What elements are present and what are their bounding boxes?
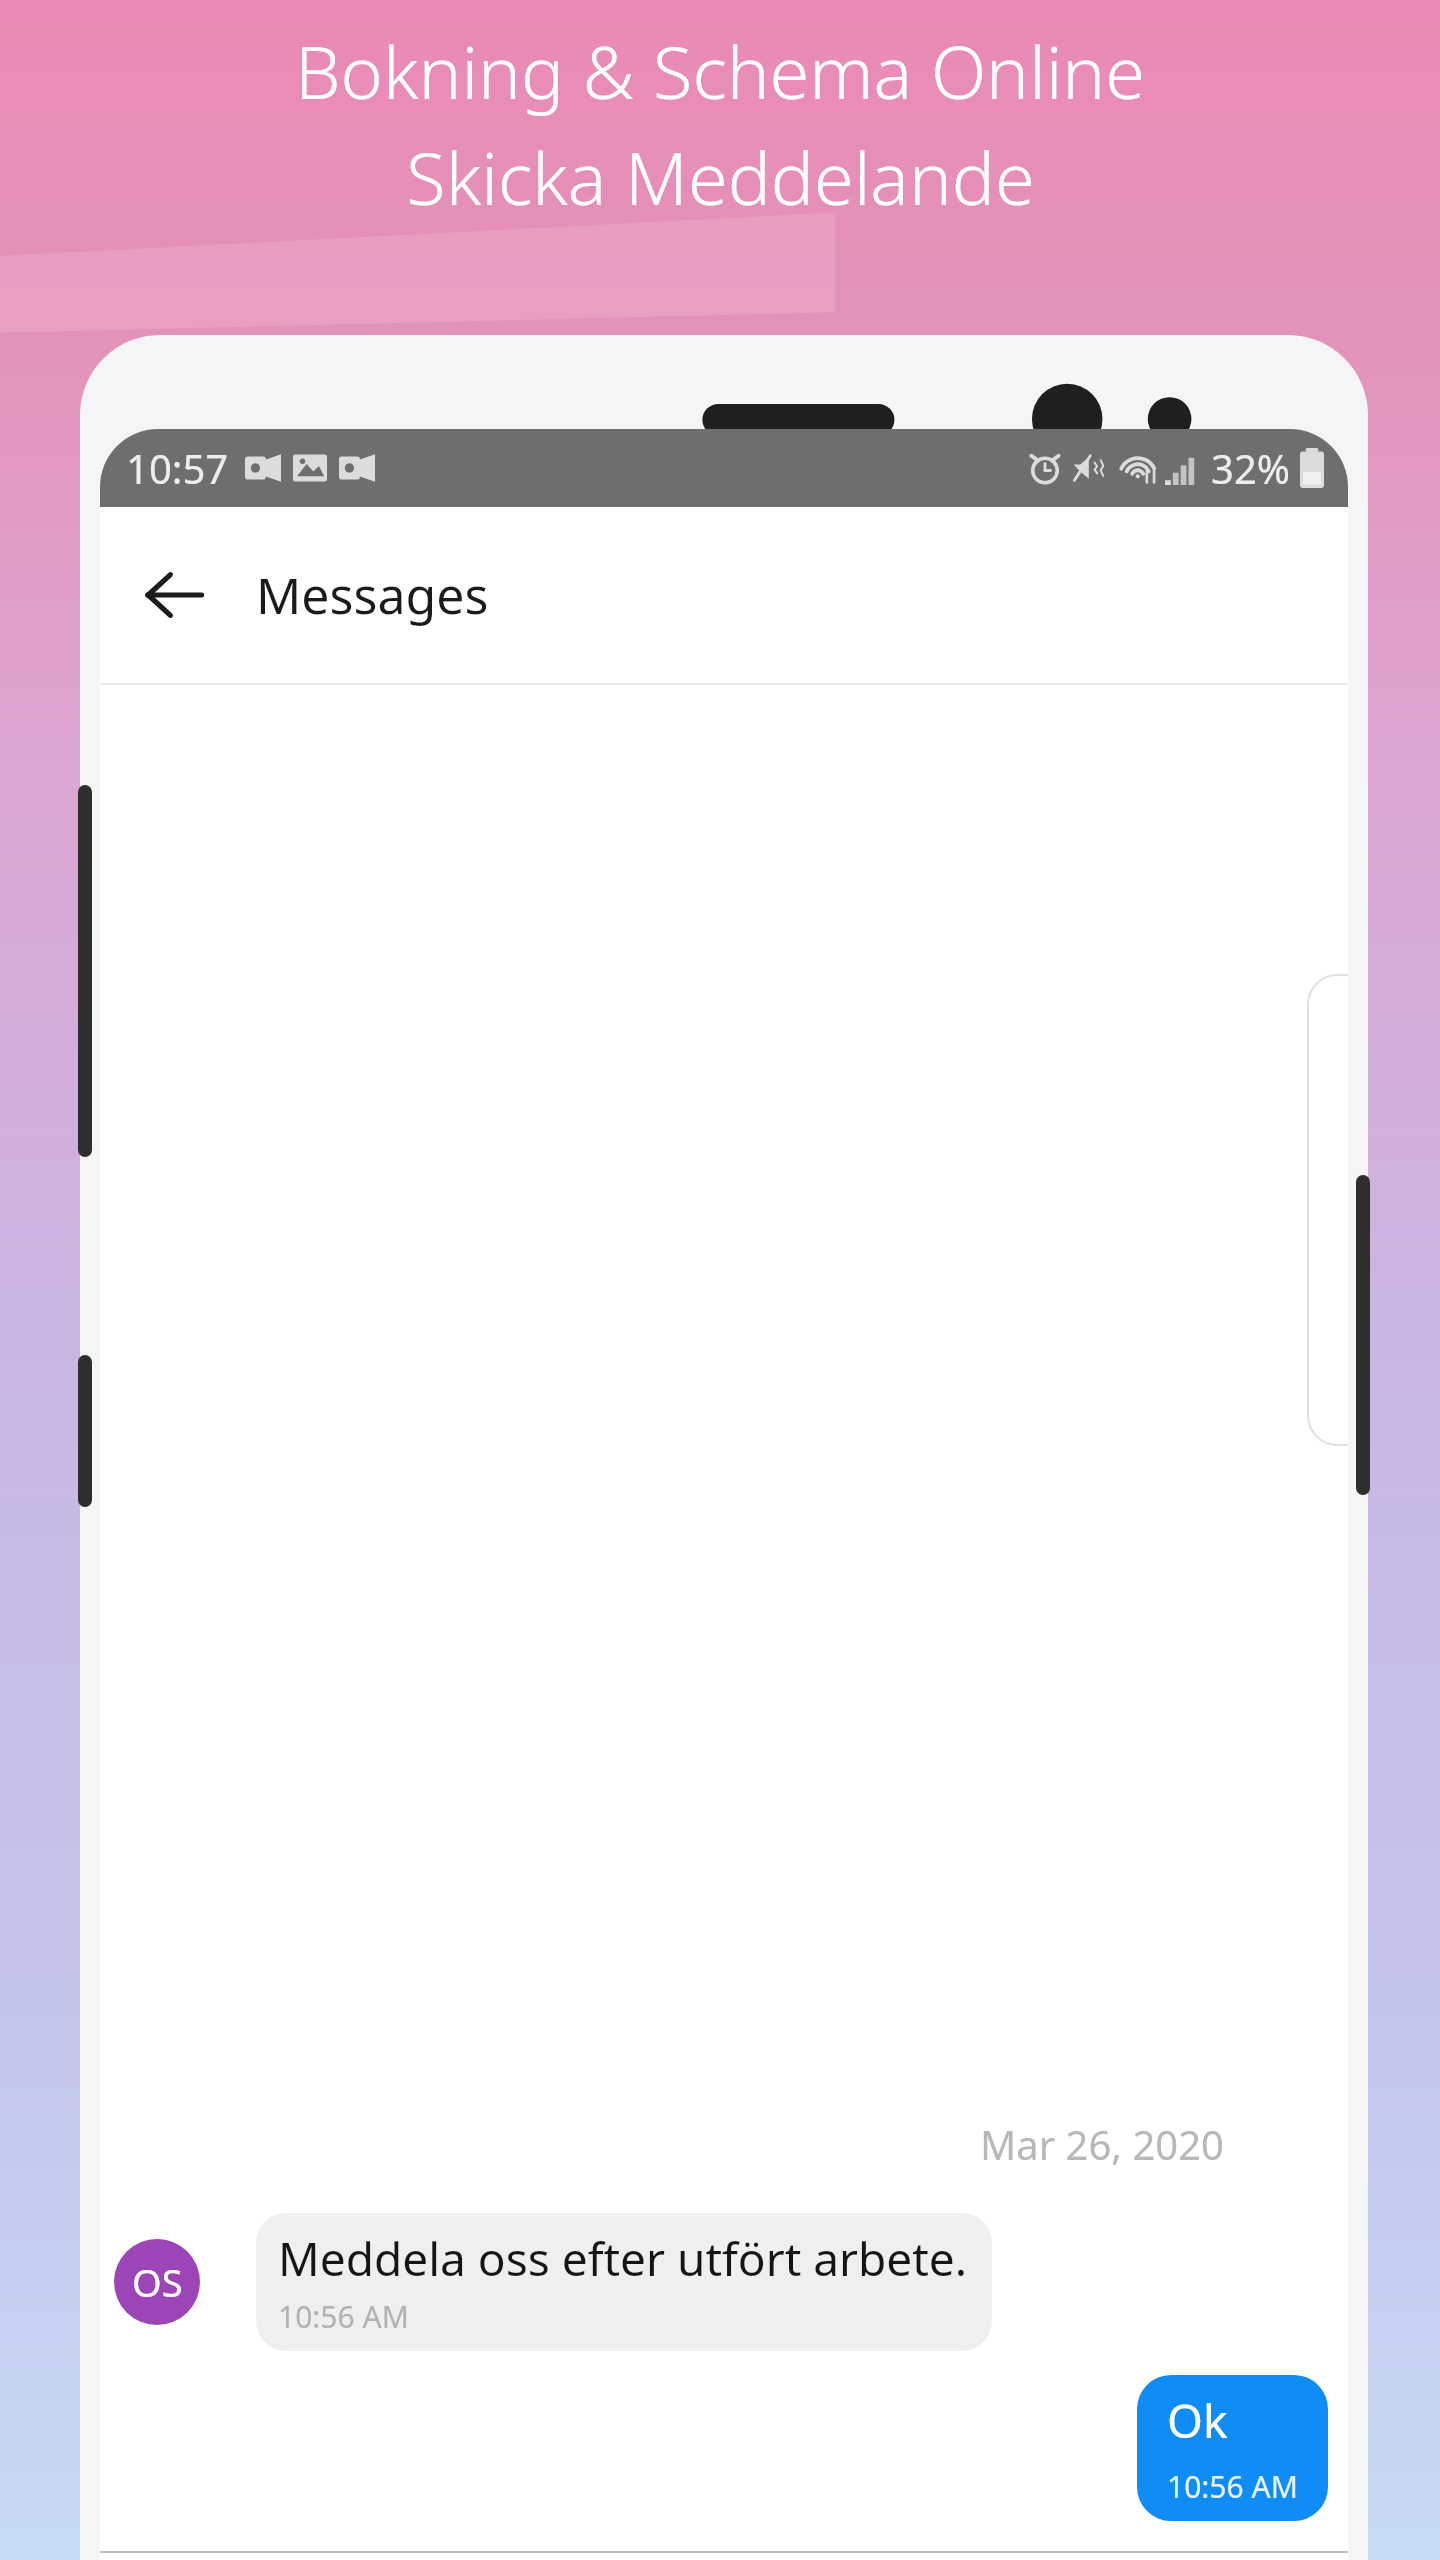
button[interactable]: Back <box>120 541 228 649</box>
button[interactable]: Meddela oss efter utfört arbete. <box>256 2213 992 2351</box>
staticText: OS <box>132 2256 183 2308</box>
staticText: 10:56 AM <box>278 2296 409 2337</box>
staticText: 32% <box>1211 441 1290 495</box>
staticText: Skicka Meddelande <box>406 128 1035 226</box>
staticText: 10:57 <box>126 441 229 495</box>
staticText: Ok <box>1167 2389 1228 2452</box>
staticText: Meddela oss efter utfört arbete. <box>278 2227 968 2290</box>
staticText: Bokning & Schema Online <box>295 22 1145 120</box>
button[interactable]: Ok <box>1137 2375 1328 2521</box>
staticText: Messages <box>256 561 489 629</box>
staticText: 10:56 AM <box>1167 2466 1298 2507</box>
staticText: Mar 26, 2020 <box>100 2117 1224 2171</box>
